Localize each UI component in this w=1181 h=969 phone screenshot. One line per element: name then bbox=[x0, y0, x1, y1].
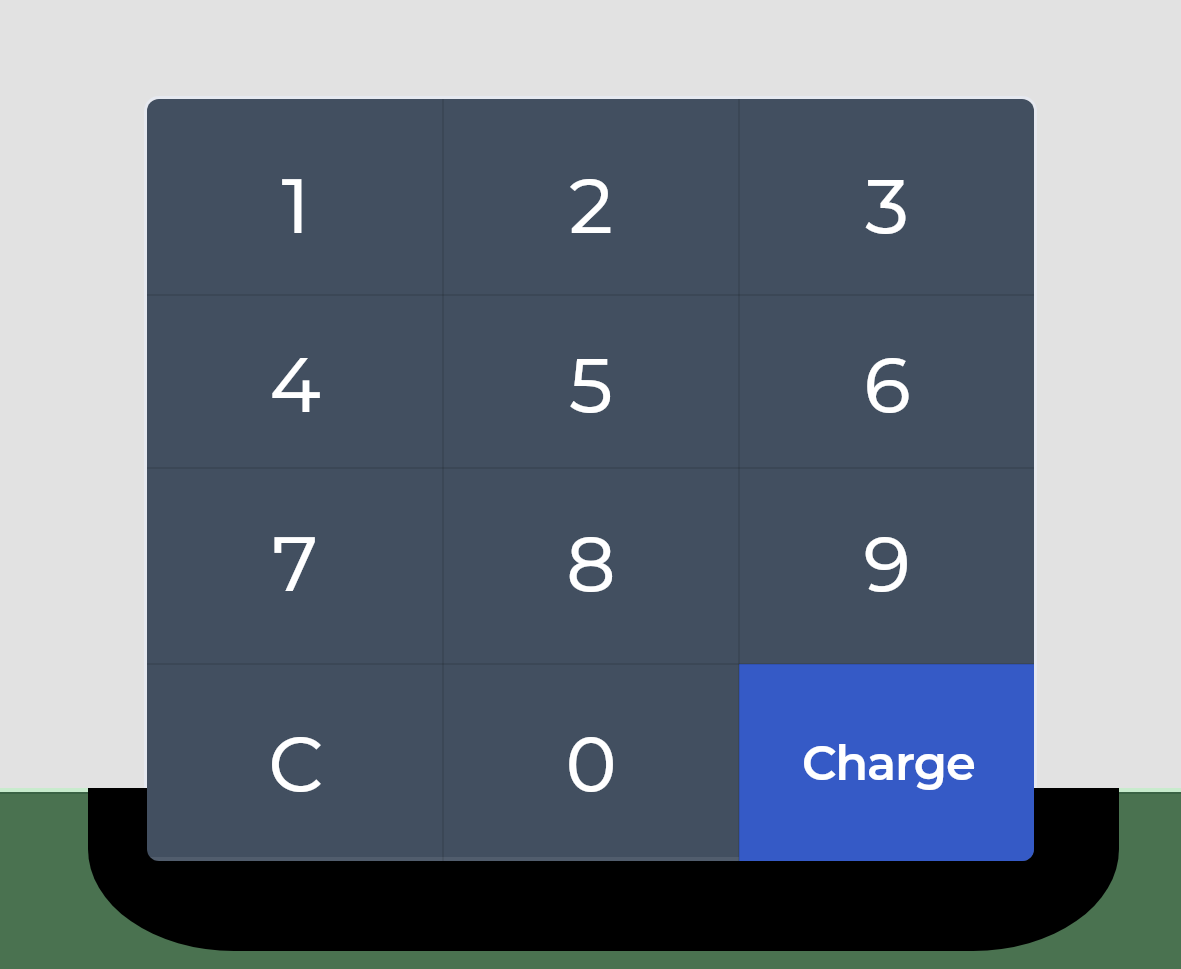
button[interactable]: 7 bbox=[147, 468, 443, 664]
staticText: 5 bbox=[569, 337, 613, 431]
staticText: C bbox=[268, 716, 323, 810]
staticText: 6 bbox=[863, 337, 911, 431]
staticText: 4 bbox=[269, 337, 321, 431]
staticText: 7 bbox=[272, 516, 318, 610]
button[interactable]: 4 bbox=[147, 295, 443, 468]
button[interactable]: 9 bbox=[739, 468, 1034, 664]
button[interactable]: 6 bbox=[739, 295, 1034, 468]
button[interactable]: 1 bbox=[147, 99, 443, 295]
button[interactable]: 0 bbox=[443, 664, 739, 861]
staticText: 3 bbox=[865, 158, 909, 252]
staticText: Charge bbox=[802, 734, 975, 793]
button[interactable]: 2 bbox=[443, 99, 739, 295]
staticText: 2 bbox=[569, 158, 613, 252]
button[interactable]: Charge bbox=[739, 664, 1034, 861]
button[interactable]: 5 bbox=[443, 295, 739, 468]
button[interactable]: 3 bbox=[739, 99, 1034, 295]
button[interactable]: 8 bbox=[443, 468, 739, 664]
staticText: 9 bbox=[863, 516, 911, 610]
button[interactable]: Clear bbox=[147, 664, 443, 861]
staticText: 1 bbox=[281, 158, 310, 252]
staticText: 0 bbox=[565, 716, 617, 810]
staticText: 8 bbox=[566, 516, 616, 610]
